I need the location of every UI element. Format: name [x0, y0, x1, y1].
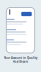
staticText: Healthcare [12, 60, 28, 63]
staticText: Your Account in Quality [4, 56, 37, 60]
